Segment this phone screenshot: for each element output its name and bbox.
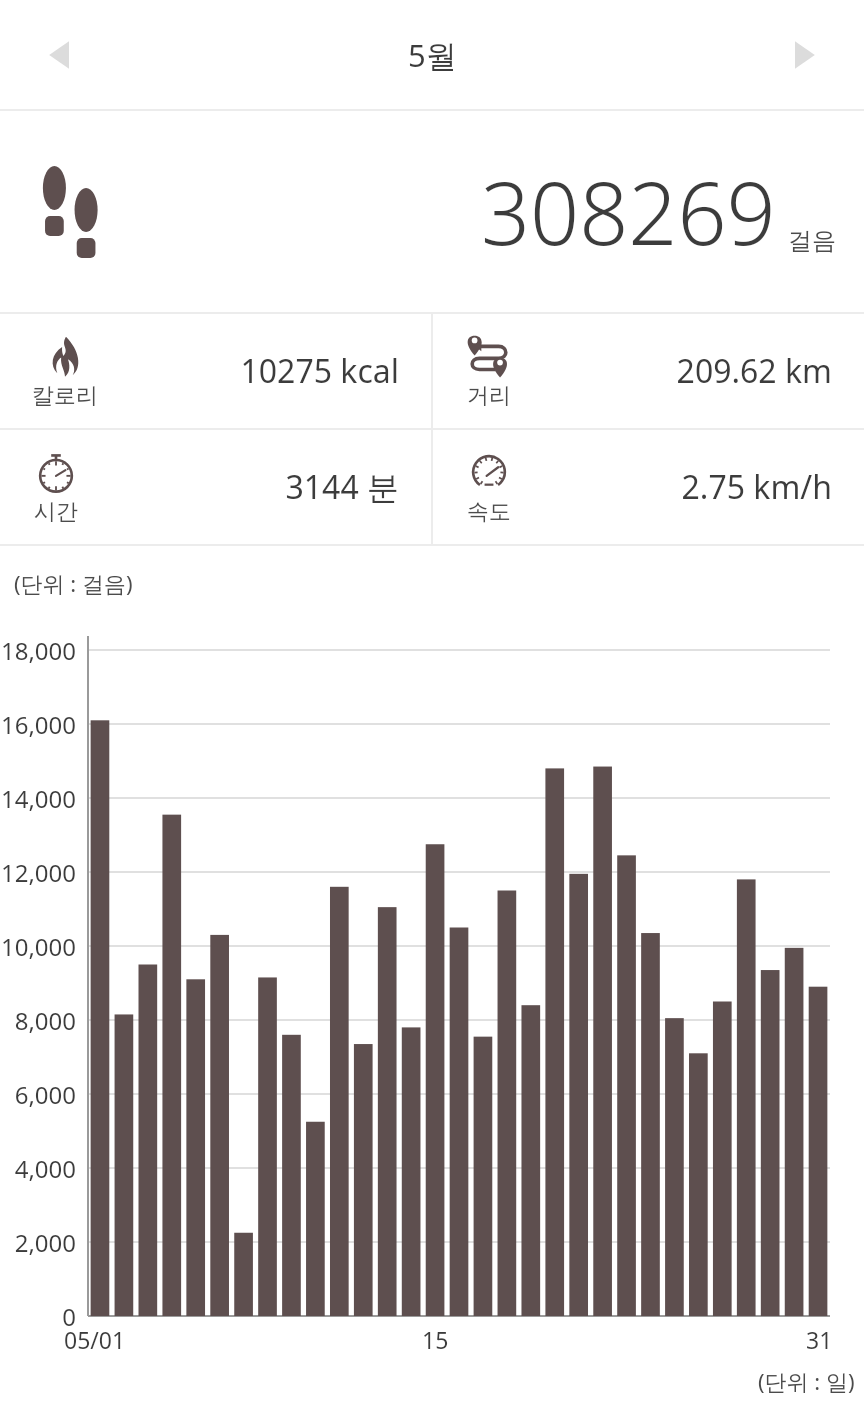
button[interactable]: Calories <box>0 314 431 428</box>
staticText: (단위 : 걸음) <box>14 568 133 598</box>
button[interactable]: Time <box>0 430 431 544</box>
staticText: 6,000 <box>0 1078 76 1111</box>
staticText: 209.62 km <box>433 349 832 393</box>
staticText: (단위 : 일) <box>758 1366 855 1396</box>
staticText: 308269 <box>481 153 776 270</box>
staticText: 5월 <box>408 34 457 76</box>
staticText: 10,000 <box>0 930 76 963</box>
staticText: 05/01 <box>64 1324 126 1355</box>
staticText: 10275 kcal <box>0 349 399 393</box>
staticText: 거리 <box>467 382 511 410</box>
staticText: 걸음 <box>788 226 836 256</box>
staticText: 18,000 <box>0 634 76 667</box>
button[interactable]: 308269 <box>0 111 864 312</box>
staticText: 0 <box>0 1300 76 1333</box>
staticText: 16,000 <box>0 708 76 741</box>
button[interactable]: Next month <box>770 21 838 89</box>
staticText: 4,000 <box>0 1152 76 1185</box>
staticText: 속도 <box>467 498 511 526</box>
button[interactable]: Previous month <box>26 21 94 89</box>
staticText: 시간 <box>34 498 78 526</box>
staticText: 15 <box>422 1324 449 1355</box>
staticText: 31 <box>806 1324 833 1355</box>
staticText: 3144 분 <box>0 465 399 509</box>
staticText: 14,000 <box>0 782 76 815</box>
button[interactable]: Speed <box>433 430 864 544</box>
staticText: 2,000 <box>0 1226 76 1259</box>
staticText: 12,000 <box>0 856 76 889</box>
button[interactable]: Distance <box>433 314 864 428</box>
staticText: 2.75 km/h <box>433 465 832 509</box>
staticText: 8,000 <box>0 1004 76 1037</box>
staticText: 칼로리 <box>32 382 98 410</box>
